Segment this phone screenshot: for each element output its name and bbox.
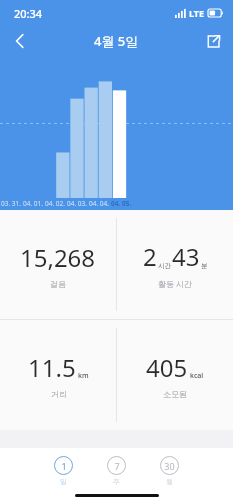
staticText: 거리 [51, 389, 67, 399]
staticText: 20:34 [14, 6, 43, 21]
staticText: 일 [60, 477, 67, 486]
staticText: LTE [189, 7, 205, 19]
button[interactable]: Back [0, 26, 40, 56]
staticText: 2 [143, 240, 157, 273]
staticText: 43 [172, 240, 200, 273]
staticText: 30 [164, 460, 175, 472]
staticText: 04. 04. [89, 199, 110, 208]
button[interactable]: Share [193, 26, 233, 56]
staticText: 11.5 [28, 351, 76, 384]
staticText: 분 [201, 262, 208, 270]
button[interactable]: 405 [117, 320, 233, 430]
staticText: 04. 01. [23, 199, 44, 208]
staticText: 걸음 [50, 279, 66, 289]
staticText: km [78, 371, 89, 381]
staticText: 1 [61, 460, 67, 472]
button[interactable]: 11.5 [0, 320, 116, 430]
staticText: 405 [146, 351, 188, 384]
staticText: 04. 02. [45, 199, 66, 208]
staticText: 03. 31. [1, 199, 22, 208]
button[interactable]: 2 [117, 210, 233, 319]
staticText: 소모됨 [163, 389, 187, 399]
button[interactable]: 15,268 [0, 210, 116, 319]
staticText: 활동 시간 [158, 278, 193, 289]
staticText: 04. 03. [67, 199, 88, 208]
staticText: 04. 05. [111, 199, 132, 208]
staticText: 시간 [158, 262, 171, 270]
staticText: 주 [113, 477, 120, 486]
button[interactable]: 7 [105, 456, 128, 486]
staticText: kcal [190, 371, 204, 381]
staticText: 15,268 [20, 241, 96, 274]
staticText: 월 [166, 477, 173, 486]
button[interactable]: 1 [52, 456, 75, 486]
staticText: 4월 5일 [94, 32, 139, 50]
staticText: 7 [114, 460, 120, 472]
button[interactable]: 30 [158, 456, 181, 486]
